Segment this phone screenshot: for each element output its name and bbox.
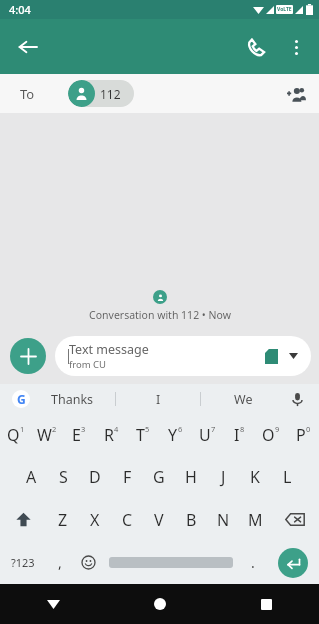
staticText: To bbox=[20, 85, 35, 103]
staticText: G bbox=[17, 391, 26, 407]
button[interactable]: M bbox=[239, 498, 271, 541]
button[interactable]: Backspace bbox=[271, 498, 319, 541]
button[interactable]: F bbox=[111, 456, 143, 498]
staticText: Y bbox=[168, 424, 178, 446]
button[interactable]: , bbox=[45, 541, 74, 584]
staticText: J bbox=[221, 466, 226, 488]
staticText: 7 bbox=[211, 424, 216, 434]
button[interactable]: C bbox=[111, 498, 143, 541]
button[interactable]: More options bbox=[277, 28, 315, 66]
staticText: U bbox=[199, 424, 211, 446]
button[interactable]: X bbox=[79, 498, 111, 541]
button[interactable]: T bbox=[127, 414, 159, 456]
staticText: F bbox=[123, 466, 132, 488]
button[interactable]: Y bbox=[159, 414, 191, 456]
staticText: , bbox=[58, 553, 62, 572]
staticText: C bbox=[122, 509, 133, 531]
staticText: 1 bbox=[20, 424, 25, 434]
button[interactable]: ?123 bbox=[0, 541, 45, 584]
staticText: ?123 bbox=[11, 555, 35, 570]
button[interactable]: P bbox=[287, 414, 319, 456]
staticText: L bbox=[283, 466, 292, 488]
button[interactable]: Emoji bbox=[74, 541, 103, 584]
staticText: 5 bbox=[145, 424, 150, 434]
button[interactable]: I bbox=[116, 384, 200, 414]
staticText: Thanks bbox=[51, 391, 94, 408]
button[interactable]: D bbox=[79, 456, 111, 498]
staticText: X bbox=[90, 509, 100, 531]
button[interactable]: Recents bbox=[213, 584, 319, 624]
button[interactable]: W bbox=[31, 414, 63, 456]
button[interactable]: A bbox=[15, 456, 47, 498]
button[interactable]: 112 bbox=[68, 80, 134, 107]
staticText: 112 bbox=[100, 86, 121, 102]
staticText: V bbox=[154, 509, 164, 531]
staticText: 4 bbox=[114, 424, 119, 434]
button[interactable]: Add people bbox=[279, 77, 313, 111]
staticText: 2 bbox=[52, 424, 57, 434]
button[interactable]: G bbox=[143, 456, 175, 498]
staticText: A bbox=[26, 466, 37, 488]
staticText: D bbox=[89, 466, 101, 488]
button[interactable]: S bbox=[47, 456, 79, 498]
button[interactable]: E bbox=[63, 414, 95, 456]
staticText: Q bbox=[7, 424, 20, 446]
button[interactable]: Call bbox=[235, 26, 277, 68]
button[interactable]: Back bbox=[8, 27, 48, 67]
button[interactable]: B bbox=[175, 498, 207, 541]
staticText: from CU bbox=[69, 358, 107, 371]
staticText: G bbox=[153, 466, 165, 488]
button[interactable]: Attach bbox=[10, 338, 46, 374]
button[interactable]: J bbox=[207, 456, 239, 498]
staticText: We bbox=[234, 391, 253, 408]
staticText: Conversation with 112 • Now bbox=[89, 308, 231, 322]
staticText: 3 bbox=[81, 424, 86, 434]
button[interactable]: We bbox=[201, 384, 285, 414]
button[interactable]: Space bbox=[103, 541, 238, 584]
button[interactable]: Back bbox=[0, 584, 107, 624]
button[interactable]: Shift bbox=[0, 498, 47, 541]
staticText: W bbox=[37, 424, 52, 446]
button[interactable]: Text message bbox=[55, 336, 311, 376]
staticText: O bbox=[262, 424, 275, 446]
staticText: P bbox=[296, 424, 306, 446]
button[interactable]: H bbox=[175, 456, 207, 498]
staticText: H bbox=[185, 466, 197, 488]
staticText: K bbox=[250, 466, 260, 488]
staticText: Z bbox=[58, 509, 68, 531]
staticText: N bbox=[217, 509, 230, 531]
staticText: 9 bbox=[275, 424, 280, 434]
staticText: M bbox=[248, 509, 263, 531]
button[interactable]: U bbox=[191, 414, 223, 456]
staticText: R bbox=[104, 424, 114, 446]
staticText: I bbox=[234, 424, 240, 446]
staticText: E bbox=[72, 424, 81, 446]
button[interactable]: O bbox=[255, 414, 287, 456]
staticText: 8 bbox=[240, 424, 245, 434]
button[interactable]: Select SIM bbox=[281, 344, 305, 368]
button[interactable]: Thanks bbox=[30, 384, 115, 414]
staticText: VoLTE bbox=[277, 6, 292, 13]
button[interactable]: Enter bbox=[267, 541, 319, 584]
button[interactable]: Voice input bbox=[285, 387, 309, 411]
staticText: 6 bbox=[178, 424, 183, 434]
button[interactable]: Q bbox=[0, 414, 31, 456]
button[interactable]: K bbox=[239, 456, 271, 498]
button[interactable]: Z bbox=[47, 498, 79, 541]
button[interactable]: V bbox=[143, 498, 175, 541]
staticText: . bbox=[251, 553, 255, 572]
staticText: 0 bbox=[306, 424, 311, 434]
staticText: 4:04 bbox=[9, 2, 31, 17]
staticText: S bbox=[59, 466, 68, 488]
button[interactable]: . bbox=[238, 541, 267, 584]
staticText: I bbox=[156, 391, 161, 408]
staticText: B bbox=[186, 509, 197, 531]
staticText: T bbox=[136, 424, 145, 446]
button[interactable]: R bbox=[95, 414, 127, 456]
button[interactable]: Home bbox=[107, 584, 213, 624]
button[interactable]: I bbox=[223, 414, 255, 456]
button[interactable]: N bbox=[207, 498, 239, 541]
button[interactable]: Google bbox=[12, 390, 30, 408]
button[interactable]: L bbox=[271, 456, 303, 498]
staticText: Text message bbox=[69, 341, 149, 358]
